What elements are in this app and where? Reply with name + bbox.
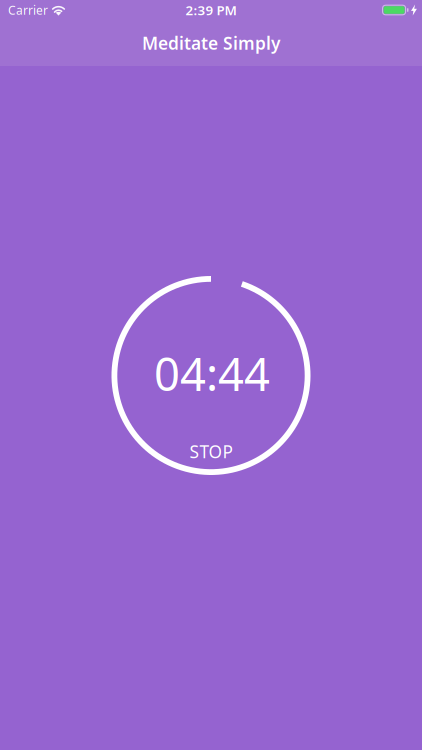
staticText: 04:44	[154, 343, 270, 404]
staticText: STOP	[189, 440, 232, 463]
staticText: Meditate Simply	[142, 31, 280, 54]
staticText: Carrier	[8, 2, 48, 18]
staticText: 2:39 PM	[185, 1, 236, 19]
button[interactable]: Stop meditation, 4 minutes 44 seconds re…	[111, 276, 310, 475]
